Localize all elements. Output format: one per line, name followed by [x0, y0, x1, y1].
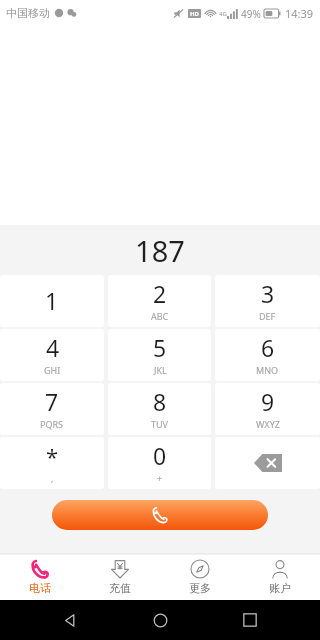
staticText: MNO — [256, 364, 279, 376]
button[interactable]: Backspace — [215, 437, 320, 489]
staticText: 1 — [45, 285, 59, 316]
button[interactable]: 5 — [108, 329, 211, 381]
staticText: DEF — [259, 310, 276, 322]
staticText: 5 — [153, 332, 167, 363]
staticText: JKL — [154, 364, 167, 376]
staticText: 8 — [153, 386, 167, 417]
button[interactable]: 更多 — [160, 554, 240, 600]
staticText: GHI — [44, 364, 61, 376]
staticText: 3 — [261, 278, 275, 309]
button[interactable]: Call — [52, 500, 268, 530]
staticText: 电话 — [29, 581, 51, 595]
button[interactable]: 6 — [215, 329, 320, 381]
staticText: 7 — [45, 386, 59, 417]
staticText: 更多 — [189, 581, 211, 595]
button[interactable]: Recents — [230, 600, 270, 640]
button[interactable]: 1 — [0, 275, 104, 327]
staticText: 2 — [153, 278, 167, 309]
staticText: 14:39 — [285, 6, 314, 21]
staticText: * — [46, 441, 59, 471]
staticText: ABC — [151, 310, 169, 322]
staticText: , — [51, 472, 54, 484]
staticText: 充值 — [109, 581, 131, 595]
other: Backspace — [215, 437, 320, 489]
button[interactable]: * — [0, 437, 104, 489]
button[interactable]: 0 — [108, 437, 211, 489]
button[interactable]: 7 — [0, 383, 104, 435]
staticText: 9 — [261, 386, 275, 417]
button[interactable]: 8 — [108, 383, 211, 435]
staticText: 4 — [46, 332, 60, 363]
staticText: HD — [190, 10, 199, 18]
button[interactable]: Home — [140, 600, 180, 640]
staticText: 49% — [241, 7, 261, 21]
staticText: WXYZ — [256, 418, 280, 430]
button[interactable]: 充值 — [80, 554, 160, 600]
button[interactable]: 3 — [215, 275, 320, 327]
button[interactable]: Back — [50, 600, 90, 640]
button[interactable]: 账户 — [240, 554, 320, 600]
staticText: 4G — [219, 10, 227, 18]
button[interactable]: 9 — [215, 383, 320, 435]
button[interactable]: 电话 — [0, 554, 80, 600]
staticText: 187 — [135, 231, 185, 270]
staticText: 6 — [261, 332, 275, 363]
staticText: 账户 — [269, 581, 291, 595]
staticText: + — [157, 472, 163, 484]
staticText: 中国移动 — [6, 6, 50, 20]
staticText: PQRS — [40, 418, 64, 430]
button[interactable]: 2 — [108, 275, 211, 327]
button[interactable]: 4 — [0, 329, 104, 381]
staticText: 0 — [153, 440, 167, 471]
staticText: TUV — [151, 418, 168, 430]
